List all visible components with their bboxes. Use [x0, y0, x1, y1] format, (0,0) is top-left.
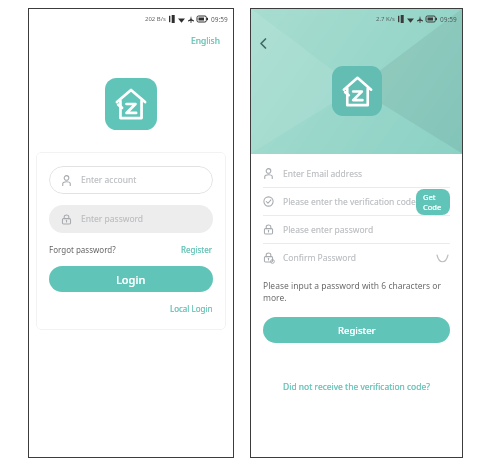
button[interactable]: Get Code: [416, 189, 450, 215]
staticText: Enter Email address: [283, 168, 363, 180]
button[interactable]: Enter Email address: [263, 160, 450, 187]
staticText: Please enter the verification code: [283, 196, 416, 208]
button[interactable]: Forgot password?: [49, 242, 116, 257]
staticText: Did not receive the verification code?: [283, 381, 430, 393]
staticText: Confirm Password: [283, 252, 356, 264]
staticText: Please enter password: [283, 224, 374, 236]
staticText: 09:59: [440, 15, 457, 24]
button[interactable]: Enter password: [49, 205, 213, 233]
staticText: 09:59: [211, 15, 228, 24]
staticText: Enter account: [81, 174, 137, 186]
button[interactable]: Confirm Password: [263, 244, 450, 271]
button[interactable]: Back: [250, 30, 276, 56]
staticText: Register: [338, 324, 376, 337]
staticText: Please input a password with 6 character…: [263, 280, 450, 304]
button[interactable]: Did not receive the verification code?: [279, 377, 434, 397]
staticText: 2.7 K/s: [376, 15, 395, 23]
button[interactable]: Login: [49, 266, 213, 292]
button[interactable]: English: [177, 32, 234, 50]
staticText: Forgot password?: [49, 244, 116, 255]
staticText: Get Code: [423, 192, 443, 212]
button[interactable]: Please enter the verification code: [263, 188, 450, 215]
button[interactable]: Register: [181, 242, 213, 257]
button[interactable]: Please enter password: [263, 216, 450, 243]
button[interactable]: Toggle password visibility: [434, 250, 450, 266]
staticText: English: [191, 35, 220, 47]
button[interactable]: Enter account: [49, 166, 213, 194]
staticText: 202 B/s: [145, 15, 166, 23]
staticText: Local Login: [170, 303, 213, 314]
button[interactable]: Register: [263, 317, 450, 343]
staticText: Login: [116, 272, 146, 287]
staticText: Register: [181, 244, 213, 255]
staticText: Enter password: [81, 213, 144, 225]
button[interactable]: Local Login: [170, 301, 213, 316]
